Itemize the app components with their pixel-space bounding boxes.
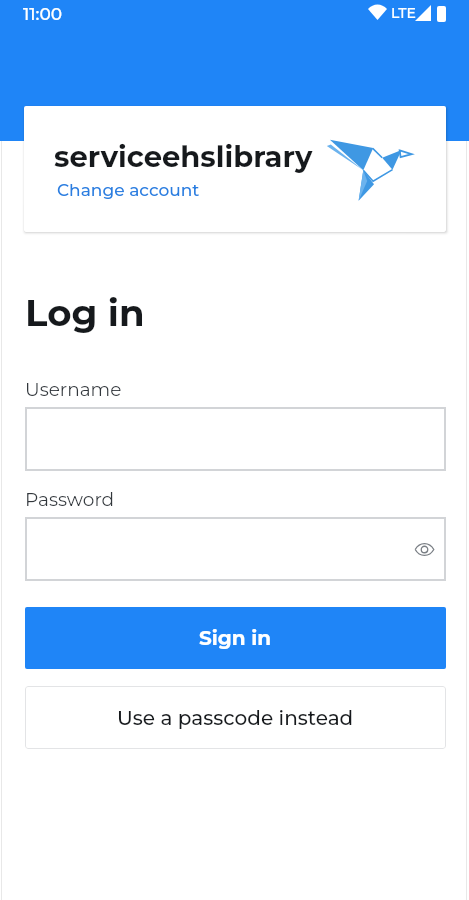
staticText: Password — [25, 488, 115, 511]
staticText: LTE — [391, 4, 416, 21]
staticText: Username — [25, 378, 122, 401]
staticText: 11:00 — [23, 4, 63, 25]
button[interactable]: Use a passcode instead — [25, 686, 446, 749]
staticText: serviceehslibrary — [54, 139, 313, 174]
button[interactable]: Change account — [57, 180, 200, 201]
staticText: Sign in — [199, 626, 272, 650]
staticText: Use a passcode instead — [117, 706, 354, 730]
button[interactable]: Show password — [409, 534, 440, 565]
button[interactable]: Show password — [25, 517, 446, 581]
button[interactable]: serviceehslibrary — [24, 106, 446, 232]
staticText: Log in — [25, 290, 145, 335]
button[interactable]: Sign in — [25, 607, 446, 669]
button[interactable] — [25, 407, 446, 471]
